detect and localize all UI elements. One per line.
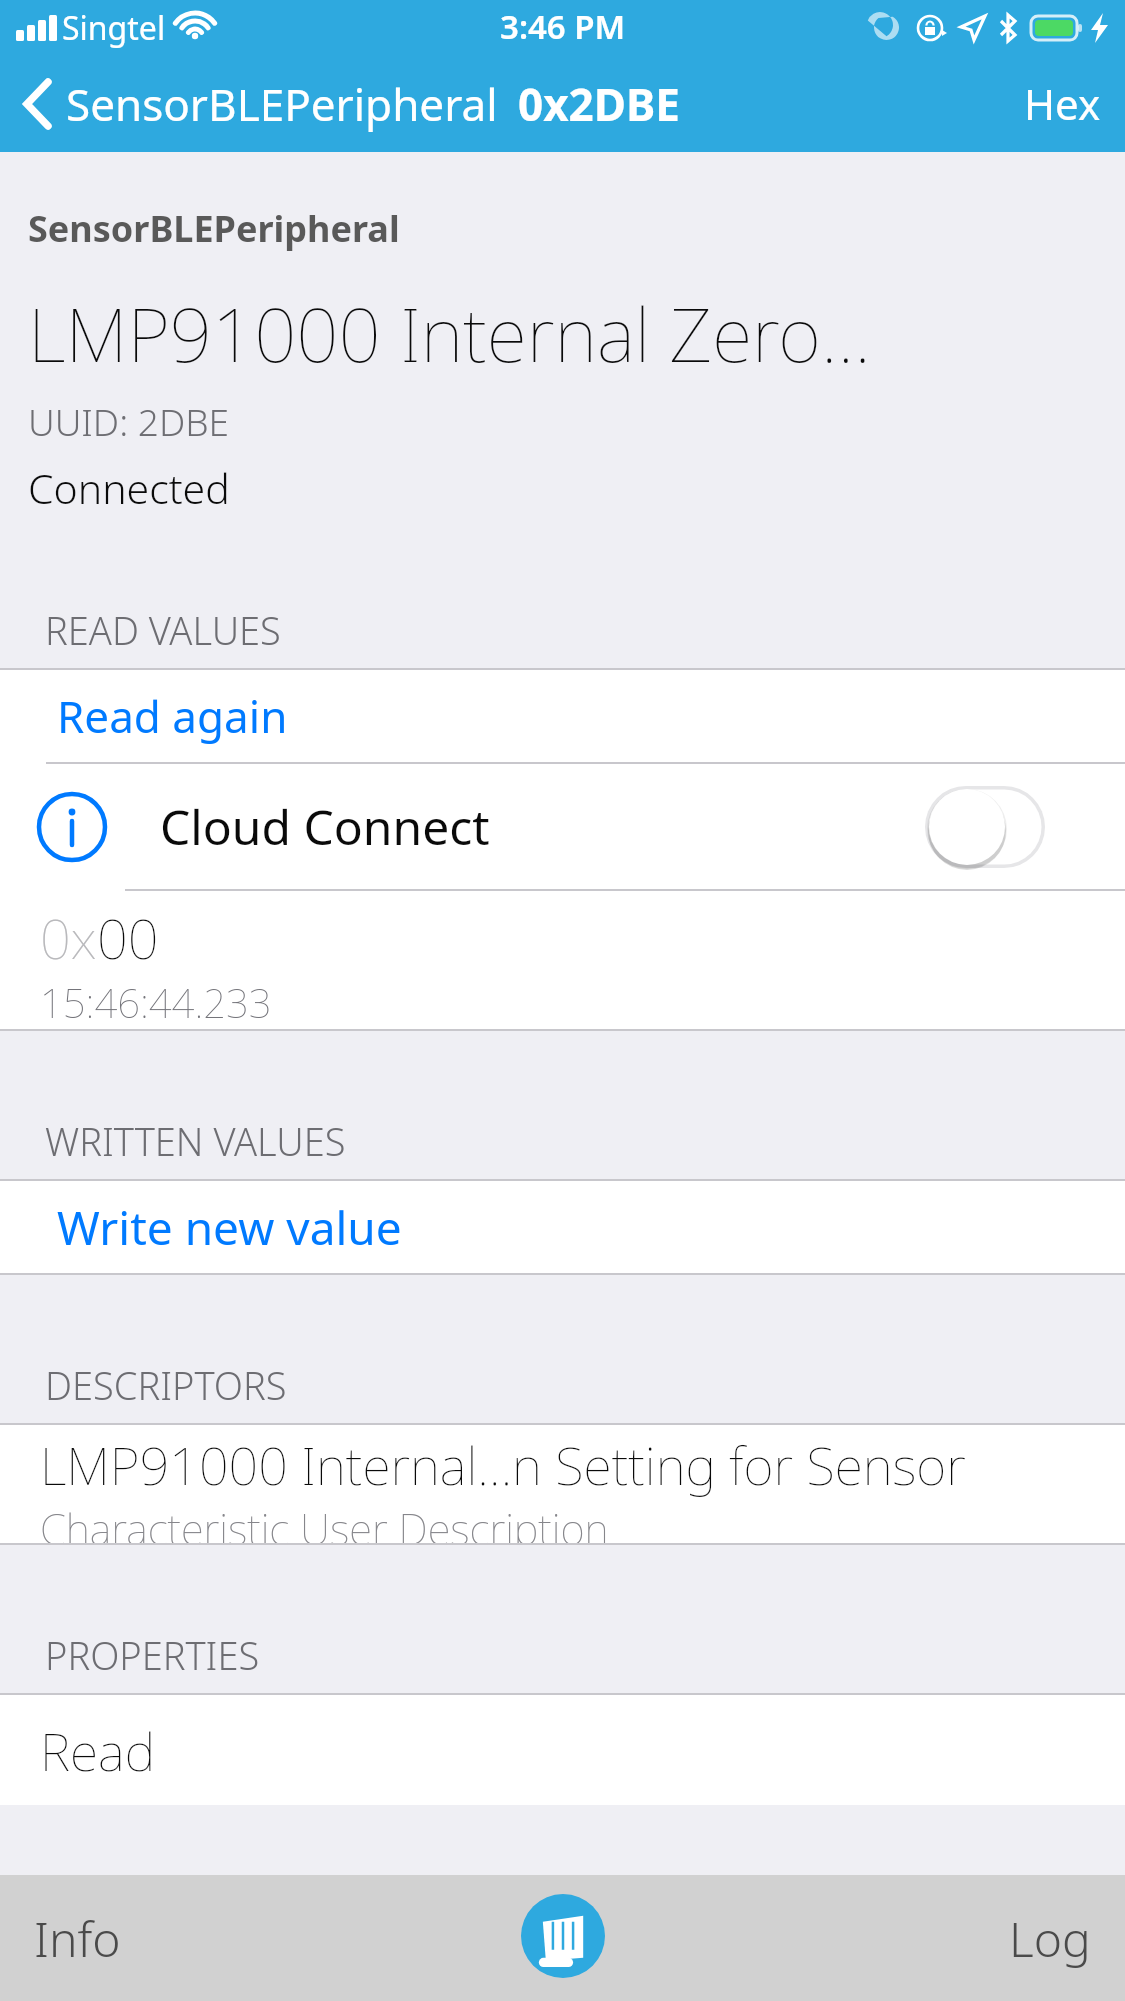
button[interactable]: LMP91000 Internal…n Setting for Sensor — [0, 1425, 1125, 1543]
staticText: Read again — [57, 686, 288, 746]
staticText: PROPERTIES — [45, 1629, 260, 1681]
other: Info — [36, 791, 108, 863]
staticText: Write new value — [57, 1196, 402, 1259]
staticText: DESCRIPTORS — [45, 1359, 287, 1411]
staticText: Characteristic User Description — [40, 1500, 609, 1543]
staticText: 3:46 PM — [500, 4, 626, 49]
staticText: Hex — [1024, 75, 1101, 132]
staticText: 00 — [97, 901, 159, 975]
staticText: Info — [34, 1906, 121, 1971]
other: Back — [18, 74, 60, 134]
button[interactable]: Log — [969, 1888, 1125, 1989]
staticText: 0x — [40, 901, 97, 975]
staticText: 15:46:44.233 — [40, 975, 272, 1029]
button[interactable]: Write new value — [0, 1181, 1125, 1273]
button[interactable]: Back — [0, 74, 680, 134]
staticText: WRITTEN VALUES — [45, 1115, 346, 1167]
staticText: UUID: 2DBE — [28, 396, 230, 446]
staticText: Log — [1009, 1906, 1091, 1971]
staticText: Connected — [28, 460, 230, 516]
staticText: Read — [40, 1715, 155, 1786]
staticText: 0x2DBE — [518, 74, 680, 134]
staticText: Singtel — [62, 6, 166, 50]
staticText: LMP91000 Internal…n Setting for Sensor — [40, 1429, 966, 1500]
staticText: Cloud Connect — [160, 794, 490, 859]
staticText: READ VALUES — [45, 604, 281, 656]
staticText: LMP91000 Internal Zero… — [28, 283, 871, 384]
button[interactable]: Cloud Connect toggle — [925, 786, 1045, 868]
button[interactable]: Info — [0, 1888, 161, 1989]
button[interactable]: Read again — [0, 670, 1125, 762]
staticText: SensorBLEPeripheral — [66, 74, 498, 134]
button[interactable]: Info — [0, 764, 1125, 889]
staticText: SensorBLEPeripheral — [28, 204, 400, 253]
button[interactable]: Hex — [1000, 59, 1125, 148]
button[interactable]: Punch — [521, 1894, 605, 1978]
